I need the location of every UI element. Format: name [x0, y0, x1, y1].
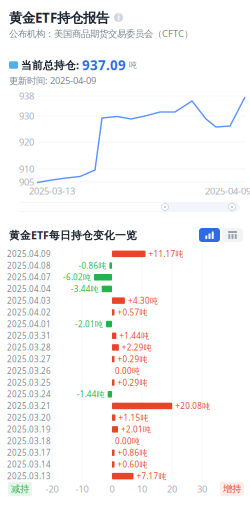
staticText: 减持 [11, 483, 29, 495]
staticText: +0.29吨 [117, 377, 147, 388]
staticText: 2025.04.07 [7, 272, 51, 282]
staticText: +4.30吨 [128, 295, 158, 306]
staticText: +1.15吨 [118, 412, 148, 423]
staticText: 增持 [223, 483, 241, 495]
staticText: 2025.03.21 [7, 401, 51, 411]
staticText: 黄金ETF每日持仓变化一览 [9, 228, 137, 242]
staticText: 2025.03.13 [7, 471, 51, 481]
staticText: -6.02吨 [63, 272, 91, 282]
staticText: +0.29吨 [117, 354, 147, 364]
staticText: i [117, 12, 119, 23]
staticText: +0.86吨 [118, 447, 148, 458]
staticText: 2025.04.04 [7, 284, 51, 294]
staticText: 吨 [129, 60, 137, 70]
staticText: 30 [197, 483, 207, 495]
staticText: 公布机构：美国商品期货交易委员会（CFTC） [9, 27, 193, 40]
staticText: 2025.03.18 [7, 436, 51, 446]
staticText: 2025.04.02 [7, 307, 51, 318]
staticText: -2.01吨 [75, 319, 103, 329]
staticText: 920 [19, 136, 34, 148]
staticText: 2025.03.24 [7, 389, 51, 399]
staticText: 10 [137, 483, 147, 495]
staticText: 930 [19, 110, 34, 122]
staticText: 当前总持仓: [21, 58, 79, 72]
staticText: 2025.03.20 [7, 412, 51, 423]
staticText: +2.29吨 [122, 342, 152, 353]
button[interactable]: 表格视图 [222, 228, 243, 242]
staticText: 2025.03.28 [7, 342, 51, 353]
staticText: +1.44吨 [119, 330, 149, 341]
staticText: 937.09 [82, 56, 126, 74]
staticText: 2025.04.09 [7, 248, 51, 259]
staticText: 2025.04.01 [7, 319, 51, 329]
staticText: +0.57吨 [117, 307, 147, 318]
staticText: 2025.03.31 [7, 330, 51, 341]
staticText: -20 [45, 483, 58, 495]
staticText: 2025-03-13 [29, 185, 75, 197]
staticText: 2025.03.27 [7, 354, 51, 364]
staticText: -0.86吨 [78, 260, 106, 271]
staticText: -10 [75, 483, 88, 495]
staticText: +2.01吨 [121, 424, 151, 435]
staticText: +11.17吨 [148, 248, 183, 259]
staticText: 2025.03.14 [7, 459, 51, 470]
staticText: 0.00吨 [115, 436, 140, 446]
staticText: +7.17吨 [136, 471, 166, 481]
staticText: 905 [19, 176, 34, 188]
staticText: 黄金ETF持仓报告 [9, 9, 109, 26]
staticText: -3.44吨 [71, 284, 99, 294]
staticText: 0 [109, 483, 114, 495]
staticText: 2025.04.03 [7, 295, 51, 306]
staticText: 2025-04-09 [205, 185, 250, 197]
staticText: 2025.03.25 [7, 377, 51, 388]
staticText: -1.44吨 [77, 389, 105, 399]
staticText: 0.00吨 [115, 365, 140, 376]
staticText: 938 [19, 90, 34, 102]
staticText: +0.60吨 [117, 459, 147, 470]
staticText: 20 [167, 483, 177, 495]
staticText: 910 [19, 163, 34, 175]
button[interactable]: 说明 [113, 12, 124, 23]
staticText: 2025.03.26 [7, 365, 51, 376]
staticText: 更新时间: 2025-04-09 [9, 74, 96, 87]
button[interactable]: 图表视图 [199, 228, 220, 242]
staticText: +20.08吨 [175, 401, 210, 411]
staticText: 2025.04.08 [7, 260, 51, 271]
staticText: 2025.03.17 [7, 447, 51, 458]
staticText: 2025.03.19 [7, 424, 51, 435]
